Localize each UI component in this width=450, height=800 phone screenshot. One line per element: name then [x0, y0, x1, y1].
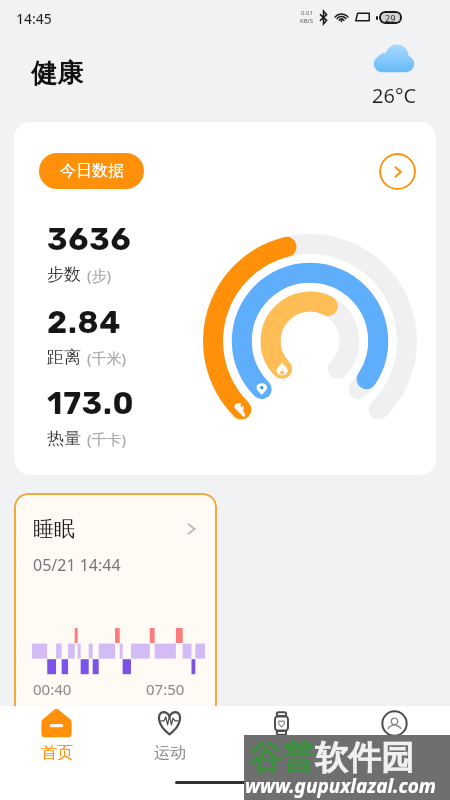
- staticText: 设备: [266, 743, 298, 763]
- staticText: 今日数据: [60, 161, 124, 181]
- staticText: 软件园: [315, 737, 414, 779]
- staticText: 距离: [47, 347, 81, 368]
- staticText: 05/21 14:44: [33, 554, 121, 576]
- staticText: 健康: [31, 57, 83, 90]
- staticText: (千卡): [87, 429, 127, 449]
- staticText: 07:50: [146, 679, 185, 699]
- staticText: 173.0: [47, 385, 135, 422]
- staticText: 我的: [379, 743, 411, 763]
- staticText: 3636: [47, 221, 132, 258]
- button[interactable]: 睡眠: [14, 493, 217, 743]
- staticText: 29: [385, 12, 396, 24]
- staticText: 00:40: [33, 679, 72, 699]
- staticText: 首页: [41, 743, 73, 763]
- staticText: www.gupuxlazal.com: [245, 773, 437, 799]
- staticText: 14:45: [16, 9, 52, 28]
- button[interactable]: 运动: [113, 706, 226, 766]
- staticText: (千米): [87, 348, 127, 368]
- staticText: 睡眠: [33, 516, 75, 542]
- button[interactable]: 今日数据: [39, 153, 144, 189]
- staticText: (步): [87, 265, 112, 285]
- button[interactable]: 我的: [338, 706, 450, 766]
- staticText: 谷普: [249, 737, 315, 779]
- staticText: 0.01: [301, 9, 313, 17]
- button[interactable]: 首页: [0, 706, 113, 766]
- staticText: KB/S: [300, 17, 314, 25]
- staticText: 运动: [154, 743, 186, 763]
- staticText: 26°C: [372, 82, 417, 109]
- staticText: 步数: [47, 264, 81, 285]
- button[interactable]: 设备: [225, 706, 338, 766]
- button[interactable]: More details: [379, 153, 416, 190]
- staticText: 2.84: [47, 304, 122, 341]
- staticText: 热量: [47, 428, 81, 449]
